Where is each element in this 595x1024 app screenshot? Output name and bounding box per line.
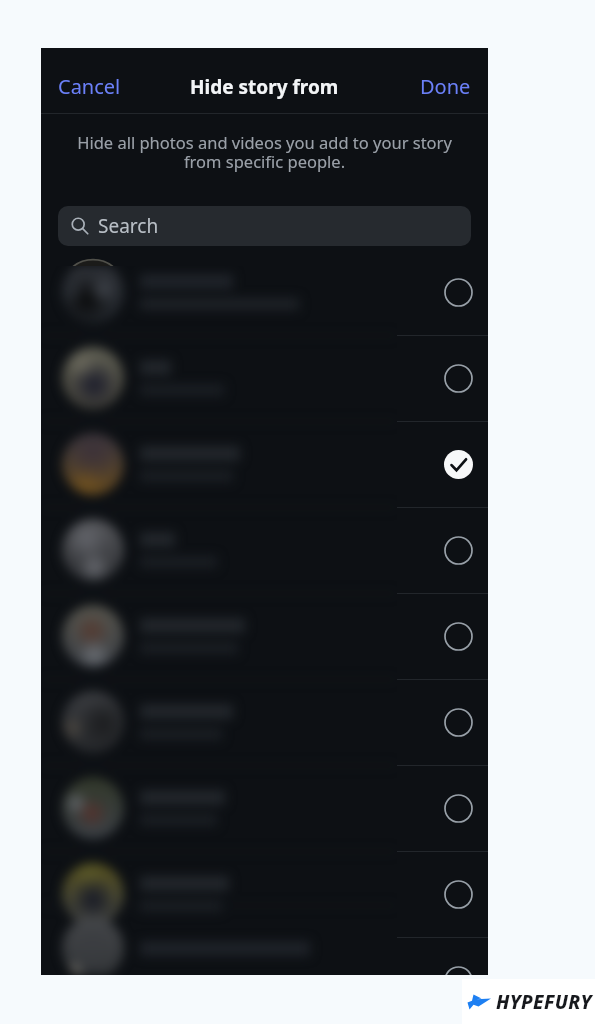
button[interactable]: Select [435,355,481,401]
staticText: Hide all photos and videos you add to yo… [68,131,461,173]
button[interactable]: Select [41,507,488,593]
button[interactable]: Cancel [48,65,131,108]
button[interactable]: Select [435,957,481,975]
staticText: Cancel [58,73,121,100]
button[interactable]: Select [41,335,488,421]
button[interactable]: Select [435,613,481,659]
staticText: HYPEFURY [496,989,592,1015]
button[interactable]: Select [435,785,481,831]
button[interactable]: Select [41,249,488,335]
staticText: Search [98,213,159,239]
button[interactable]: Done [410,65,481,108]
button[interactable]: Selected [435,441,481,487]
button[interactable]: Select [435,699,481,745]
button[interactable]: Search [58,206,471,246]
staticText: Done [420,73,471,100]
button[interactable]: Select [41,765,488,851]
button[interactable]: Select [41,937,488,975]
button[interactable]: Selected [41,421,488,507]
button[interactable]: Select [41,593,488,679]
staticText: Hide story from [190,74,339,100]
button[interactable]: Hypefury [462,979,595,1024]
button[interactable]: Select [435,871,481,917]
button[interactable]: Select [435,527,481,573]
button[interactable]: Select [435,269,481,315]
button[interactable]: Select [41,679,488,765]
button[interactable]: Select [41,851,488,937]
